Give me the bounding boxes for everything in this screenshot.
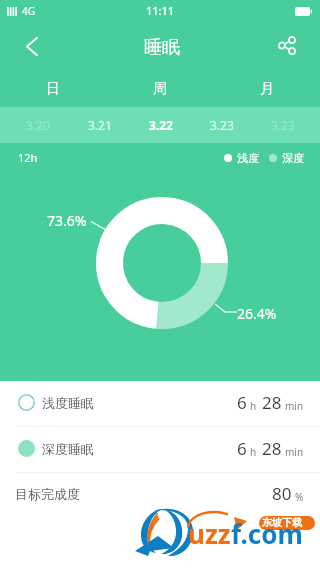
- staticText: 3.21: [88, 117, 112, 133]
- staticText: 12h: [18, 150, 38, 165]
- staticText: 目标完成度: [15, 486, 80, 502]
- button[interactable]: 3.23: [252, 107, 313, 143]
- staticText: 周: [153, 80, 167, 98]
- staticText: 3.20: [26, 117, 50, 133]
- staticText: min: [285, 445, 304, 459]
- staticText: 睡眠: [144, 36, 180, 59]
- button[interactable]: 日: [0, 66, 106, 107]
- staticText: 东坡下载: [262, 516, 302, 529]
- staticText: 浅度: [237, 151, 259, 165]
- button[interactable]: Back: [0, 22, 56, 66]
- staticText: 月: [260, 80, 274, 98]
- staticText: %: [295, 490, 304, 504]
- button[interactable]: 3.22: [130, 107, 191, 143]
- button[interactable]: 3.20: [7, 107, 69, 143]
- staticText: 73.6%: [47, 211, 87, 230]
- staticText: h: [250, 399, 257, 413]
- staticText: 深度睡眠: [42, 441, 94, 457]
- staticText: 4G: [22, 4, 35, 18]
- staticText: f.com: [231, 516, 303, 551]
- staticText: 26.4%: [237, 304, 277, 323]
- staticText: uzz: [188, 516, 231, 551]
- button[interactable]: 浅度睡眠: [0, 381, 320, 426]
- staticText: 6: [237, 391, 247, 414]
- staticText: 3.23: [271, 117, 295, 133]
- staticText: 3.23: [210, 117, 234, 133]
- button[interactable]: Share: [264, 22, 320, 66]
- staticText: 3.22: [149, 117, 173, 133]
- staticText: h: [250, 445, 257, 459]
- staticText: 11:11: [146, 3, 175, 18]
- staticText: 6: [237, 437, 247, 460]
- button[interactable]: 目标完成度: [0, 473, 320, 518]
- button[interactable]: 3.21: [69, 107, 130, 143]
- button[interactable]: 月: [213, 66, 320, 107]
- button[interactable]: 3.23: [191, 107, 252, 143]
- staticText: 28: [262, 437, 282, 460]
- staticText: 80: [272, 482, 292, 505]
- staticText: 浅度睡眠: [42, 395, 94, 411]
- button[interactable]: 周: [106, 66, 213, 107]
- staticText: min: [285, 399, 304, 413]
- staticText: 日: [46, 80, 60, 98]
- staticText: 28: [262, 391, 282, 414]
- button[interactable]: 深度睡眠: [0, 427, 320, 472]
- staticText: 深度: [282, 151, 304, 165]
